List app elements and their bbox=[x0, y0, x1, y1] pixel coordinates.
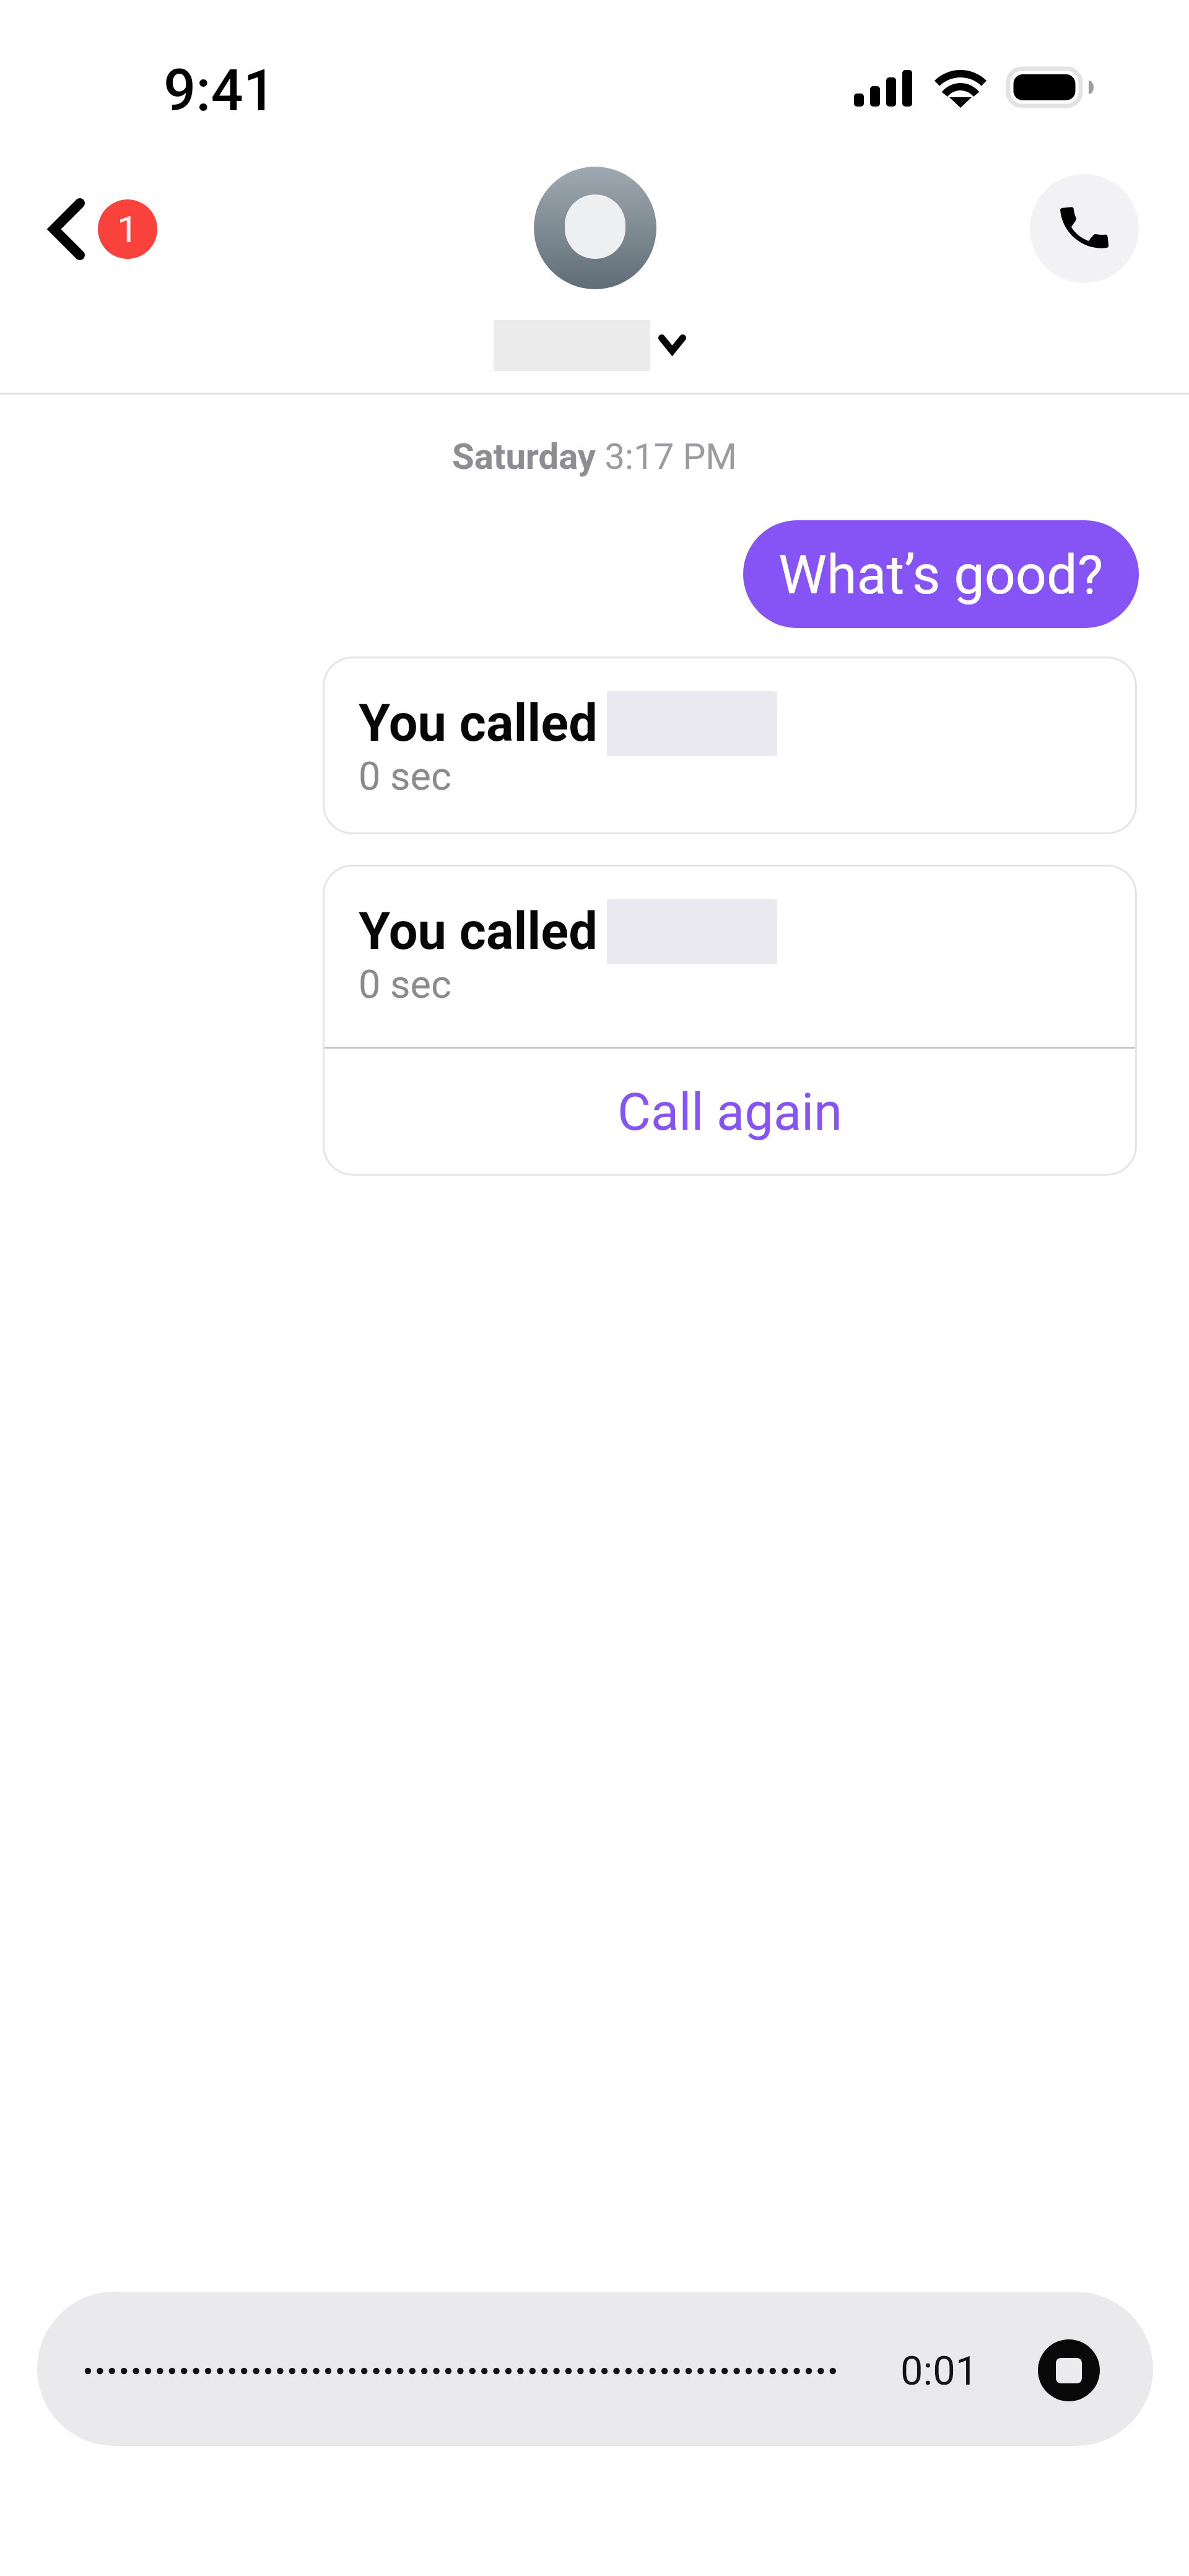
staticText: Call again bbox=[617, 1082, 843, 1142]
staticText: 9:41 bbox=[163, 58, 276, 124]
button[interactable]: You called bbox=[323, 865, 1137, 1047]
button[interactable]: What’s good? bbox=[743, 520, 1139, 628]
staticText: 1 bbox=[117, 207, 138, 251]
button[interactable]: Stop recording bbox=[1038, 2339, 1100, 2401]
button[interactable]: Conversation details bbox=[494, 320, 678, 371]
staticText: Saturday 3:17 PM bbox=[452, 435, 737, 478]
staticText: You called bbox=[359, 901, 598, 961]
staticText: 0 sec bbox=[359, 962, 451, 1008]
button[interactable]: Call again bbox=[323, 1049, 1137, 1176]
staticText: What’s good? bbox=[778, 543, 1104, 606]
button[interactable]: You called bbox=[323, 657, 1137, 834]
button[interactable]: Call bbox=[1030, 174, 1139, 283]
button[interactable]: Back bbox=[37, 186, 168, 273]
staticText: 0 sec bbox=[359, 754, 451, 800]
staticText: You called bbox=[359, 693, 598, 753]
staticText: 0:01 bbox=[900, 2347, 978, 2395]
